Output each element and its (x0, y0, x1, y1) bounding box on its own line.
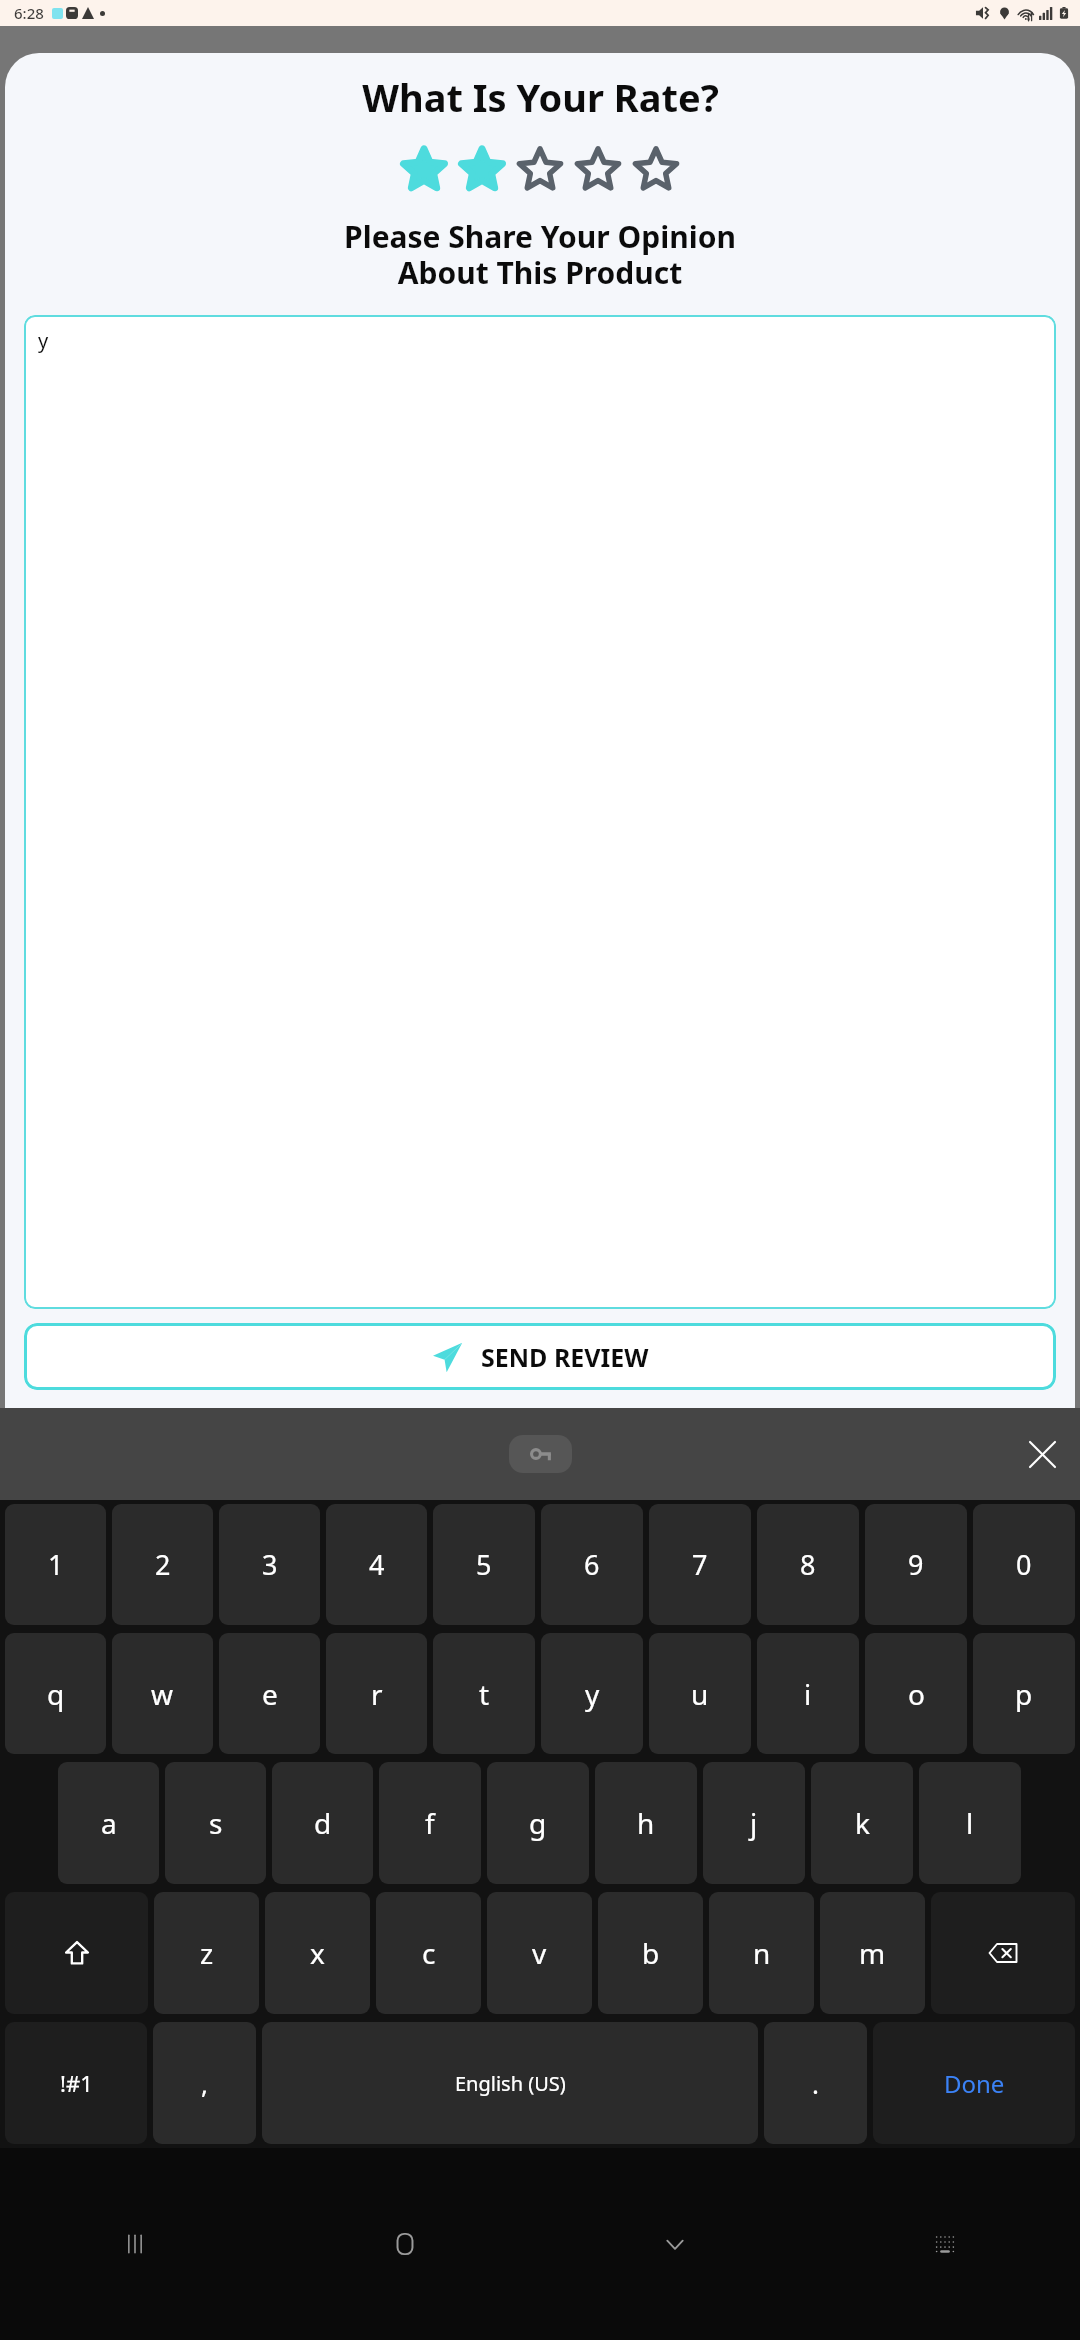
button[interactable]: d (272, 1762, 373, 1884)
staticText: Done (944, 2067, 1005, 2100)
button[interactable]: q (5, 1633, 106, 1754)
button[interactable]: p (973, 1633, 1075, 1754)
button[interactable]: SEND REVIEW (24, 1323, 1056, 1390)
button[interactable]: v (487, 1892, 592, 2014)
staticText: a (101, 1804, 117, 1842)
button[interactable]: 6 (541, 1504, 643, 1625)
button[interactable]: w (112, 1633, 213, 1754)
button[interactable]: Hide keyboard (540, 2148, 810, 2340)
button[interactable]: 7 (649, 1504, 751, 1625)
staticText: 6 (584, 1546, 600, 1583)
button[interactable]: k (811, 1762, 913, 1884)
staticText: x (310, 1934, 325, 1972)
button[interactable]: Done (873, 2022, 1075, 2144)
button[interactable]: t (433, 1633, 535, 1754)
button[interactable]: 8 (757, 1504, 859, 1625)
staticText: o (908, 1675, 925, 1713)
button[interactable]: y (541, 1633, 643, 1754)
staticText: 7 (692, 1546, 708, 1583)
button[interactable]: English (US) (262, 2022, 758, 2144)
staticText: e (262, 1675, 278, 1713)
button[interactable]: j (703, 1762, 805, 1884)
button[interactable]: u (649, 1633, 751, 1754)
button[interactable]: i (757, 1633, 859, 1754)
staticText: m (859, 1934, 886, 1972)
button[interactable]: Switch keyboard (810, 2148, 1080, 2340)
button[interactable]: Unrated star (517, 146, 563, 192)
button[interactable]: 5 (433, 1504, 535, 1625)
staticText: j (750, 1804, 758, 1842)
staticText: 8 (800, 1546, 816, 1583)
staticText: 0 (1016, 1546, 1032, 1583)
staticText: 4 (369, 1546, 385, 1583)
staticText: y (585, 1675, 600, 1713)
button[interactable]: b (598, 1892, 703, 2014)
staticText: SEND REVIEW (481, 1340, 649, 1374)
staticText: h (637, 1804, 655, 1842)
button[interactable]: Password (509, 1435, 572, 1473)
staticText: What Is Your Rate? (362, 71, 719, 123)
staticText: 1 (48, 1546, 64, 1583)
staticText: i (804, 1675, 812, 1713)
staticText: c (422, 1934, 436, 1972)
staticText: f (425, 1804, 435, 1842)
staticText: 2 (155, 1546, 171, 1583)
button[interactable]: Backspace (931, 1892, 1075, 2014)
button[interactable]: Unrated star (575, 146, 621, 192)
staticText: l (966, 1804, 974, 1842)
button[interactable]: a (58, 1762, 159, 1884)
button[interactable]: e (219, 1633, 320, 1754)
button[interactable]: f (379, 1762, 481, 1884)
button[interactable]: Unrated star (633, 146, 679, 192)
button[interactable]: m (820, 1892, 925, 2014)
staticText: v (532, 1934, 547, 1972)
button[interactable]: Rated star (459, 146, 505, 192)
staticText: k (855, 1804, 870, 1842)
button[interactable]: 0 (973, 1504, 1075, 1625)
button[interactable]: , (153, 2022, 256, 2144)
staticText: 9 (908, 1546, 924, 1583)
staticText: 5 (476, 1546, 492, 1583)
staticText: g (529, 1804, 547, 1842)
button[interactable]: s (165, 1762, 266, 1884)
other: Shift (64, 1940, 90, 1966)
staticText: 6:28 (14, 3, 44, 23)
button[interactable]: 9 (865, 1504, 967, 1625)
button[interactable]: . (764, 2022, 867, 2144)
button[interactable]: 3 (219, 1504, 320, 1625)
staticText: w (151, 1675, 174, 1713)
button[interactable]: x (265, 1892, 370, 2014)
staticText: q (47, 1675, 65, 1713)
button[interactable]: y (24, 315, 1056, 1309)
button[interactable]: r (326, 1633, 427, 1754)
button[interactable]: 1 (5, 1504, 106, 1625)
button[interactable]: 4 (326, 1504, 427, 1625)
staticText: z (200, 1934, 214, 1972)
button[interactable]: 2 (112, 1504, 213, 1625)
staticText: p (1015, 1675, 1033, 1713)
button[interactable]: Shift (5, 1892, 148, 2014)
staticText: d (314, 1804, 332, 1842)
staticText: u (691, 1675, 709, 1713)
button[interactable]: Close (1020, 1432, 1064, 1476)
staticText: n (753, 1934, 771, 1972)
staticText: . (812, 2066, 819, 2101)
button[interactable]: Recents (0, 2148, 270, 2340)
button[interactable]: !#1 (5, 2022, 147, 2144)
button[interactable]: Home (270, 2148, 540, 2340)
staticText: English (US) (455, 2070, 566, 2097)
button[interactable]: g (487, 1762, 589, 1884)
staticText: r (371, 1675, 383, 1713)
button[interactable]: c (376, 1892, 481, 2014)
other: Backspace (988, 1938, 1018, 1968)
staticText: y (38, 327, 49, 354)
button[interactable]: h (595, 1762, 697, 1884)
staticText: s (209, 1804, 223, 1842)
button[interactable]: n (709, 1892, 814, 2014)
button[interactable]: z (154, 1892, 259, 2014)
button[interactable]: o (865, 1633, 967, 1754)
button[interactable]: Rated star (401, 146, 447, 192)
staticText: Please Share Your Opinion About This Pro… (344, 216, 736, 293)
staticText: !#1 (60, 2068, 93, 2098)
button[interactable]: l (919, 1762, 1021, 1884)
